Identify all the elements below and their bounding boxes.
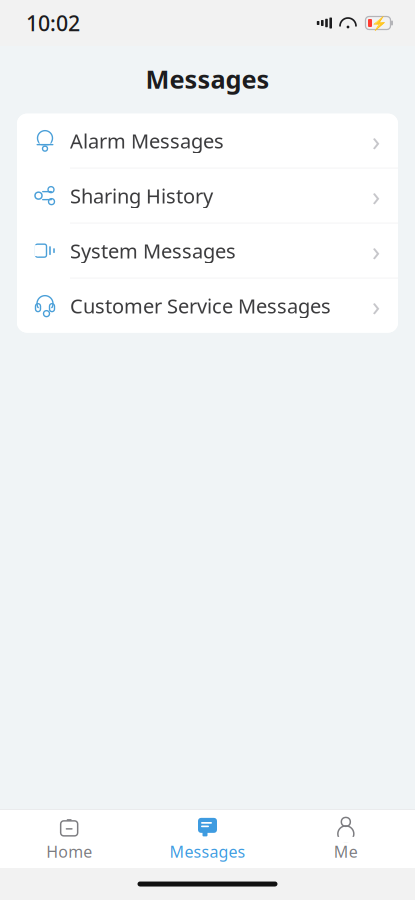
staticText: Customer Service Messages bbox=[70, 292, 331, 319]
staticText: › bbox=[372, 123, 380, 158]
button[interactable]: System Messages bbox=[17, 224, 398, 278]
staticText: Sharing History bbox=[70, 182, 213, 209]
button[interactable]: Customer Service Messages bbox=[17, 279, 398, 333]
button[interactable]: Alarm Messages bbox=[17, 114, 398, 168]
button[interactable]: Sharing History bbox=[17, 169, 398, 223]
staticText: Messages bbox=[145, 62, 269, 96]
button[interactable]: Messages bbox=[138, 809, 277, 869]
button[interactable]: Home bbox=[0, 809, 138, 869]
staticText: 10:02 bbox=[26, 9, 80, 37]
staticText: Home bbox=[46, 841, 92, 862]
staticText: ⚡ bbox=[371, 15, 388, 31]
staticText: Messages bbox=[169, 841, 245, 862]
button[interactable]: Me bbox=[277, 809, 415, 869]
staticText: Me bbox=[334, 841, 358, 862]
staticText: System Messages bbox=[70, 237, 236, 264]
staticText: Alarm Messages bbox=[70, 127, 224, 154]
staticText: › bbox=[372, 288, 380, 323]
staticText: › bbox=[372, 233, 380, 268]
staticText: › bbox=[372, 178, 380, 213]
